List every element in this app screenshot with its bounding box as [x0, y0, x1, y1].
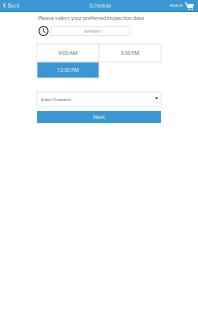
staticText: 12:30 PM	[57, 66, 79, 74]
button[interactable]: 9:00 AM	[37, 44, 99, 62]
button[interactable]: 3:30 PM	[99, 44, 161, 62]
button[interactable]: Cart, $628.00	[169, 0, 198, 11]
staticText: 9:00 AM	[58, 49, 77, 57]
staticText: 3:30 PM	[120, 49, 139, 57]
staticText: Adam Donaldson	[41, 97, 71, 102]
button[interactable]: Adam Donaldson	[37, 92, 161, 107]
staticText: 05/16/2017	[83, 28, 101, 34]
staticText: Please select your preferred inspection …	[38, 14, 144, 22]
staticText: Next	[93, 113, 105, 121]
button[interactable]: Back	[0, 0, 25, 11]
staticText: Back	[7, 2, 19, 9]
staticText: $628.00	[169, 3, 182, 8]
button[interactable]: Next	[37, 111, 161, 123]
staticText: Schedule	[89, 2, 111, 9]
button[interactable]: 12:30 PM	[37, 62, 99, 78]
